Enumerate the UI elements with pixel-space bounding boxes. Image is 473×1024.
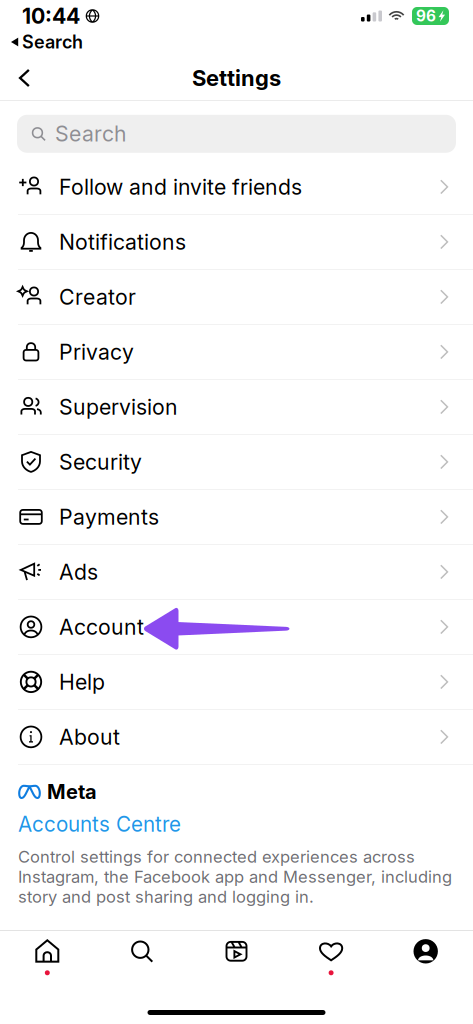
staticText: Account — [59, 614, 144, 640]
button[interactable]: Security — [0, 435, 473, 490]
staticText: Search — [22, 31, 83, 53]
button[interactable]: Notifications — [0, 215, 473, 270]
staticText: Control settings for connected experienc… — [18, 847, 452, 907]
button[interactable]: Creator — [0, 270, 473, 325]
button[interactable]: Home — [0, 931, 95, 983]
staticText: Search — [55, 121, 127, 147]
button[interactable]: Profile — [378, 931, 473, 983]
button[interactable]: Ads — [0, 545, 473, 600]
staticText: Ads — [59, 559, 98, 585]
staticText: Payments — [59, 504, 159, 530]
staticText: Accounts Centre — [18, 812, 181, 837]
button[interactable]: Back — [0, 56, 50, 100]
staticText: Settings — [192, 65, 281, 91]
button[interactable]: Search — [95, 931, 189, 983]
button[interactable]: Supervision — [0, 380, 473, 435]
button[interactable]: Likes — [284, 931, 378, 983]
button[interactable]: Help — [0, 655, 473, 710]
staticText: Follow and invite friends — [59, 174, 302, 200]
staticText: Security — [59, 449, 142, 475]
staticText: 96 — [416, 7, 436, 25]
staticText: Privacy — [59, 339, 134, 365]
button[interactable]: About — [0, 710, 473, 765]
button[interactable]: Accounts Centre — [18, 802, 453, 838]
staticText: Help — [59, 669, 105, 695]
staticText: 10:44 — [22, 3, 80, 29]
staticText: Notifications — [59, 229, 186, 255]
button[interactable]: Payments — [0, 490, 473, 545]
staticText: Meta — [47, 780, 97, 804]
button[interactable]: Reels — [189, 931, 284, 983]
staticText: Creator — [59, 284, 136, 310]
button[interactable]: Follow and invite friends — [0, 160, 473, 215]
staticText: Supervision — [59, 394, 178, 420]
button[interactable]: Account — [0, 600, 473, 655]
button[interactable]: Privacy — [0, 325, 473, 380]
staticText: About — [59, 724, 120, 750]
